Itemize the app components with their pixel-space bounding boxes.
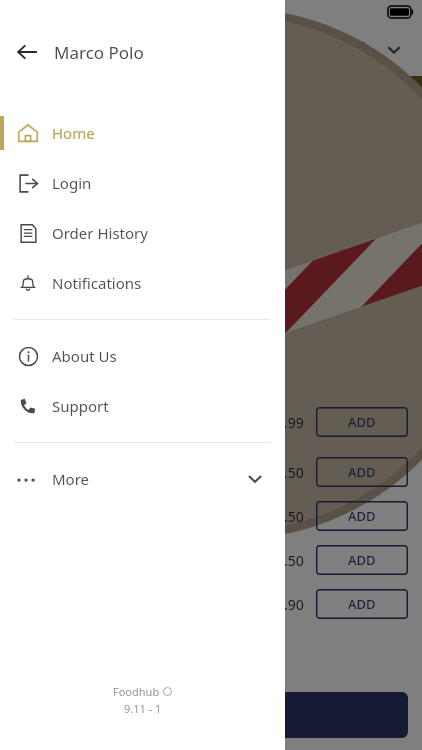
button[interactable]: ADD [316,501,408,531]
staticText: ADD [348,507,376,525]
button[interactable]: Home [0,108,285,158]
button[interactable]: ADD [316,545,408,575]
button[interactable]: Item 4 [14,538,408,582]
button[interactable]: Item 2 [14,450,408,494]
staticText: 9.11 - 1 [124,701,162,716]
button[interactable]: Expand [378,34,410,66]
button[interactable]: Order History [0,208,285,258]
staticText: More [52,469,90,489]
button[interactable]: Item 1 [14,394,408,450]
staticText: £3.90 [268,595,304,614]
button[interactable]: ADD [316,457,408,487]
staticText: Foodhub [113,684,163,699]
button[interactable]: ADD [316,407,408,437]
button[interactable]: About Us [0,331,285,381]
staticText: £6.50 [268,507,304,526]
button[interactable]: Login [0,158,285,208]
staticText: Login [52,173,92,193]
staticText: Notifications [52,273,142,293]
staticText: Marco Polo [54,41,144,64]
staticText: Item 2 [14,463,57,482]
staticText: Support [52,396,109,416]
button[interactable]: Item 3 [14,494,408,538]
staticText: Order History [52,223,148,243]
staticText: £7.99 [268,413,304,432]
staticText: ADD [348,595,376,613]
staticText: later. You can pre-order now for [16,109,252,129]
staticText: About Us [52,346,117,366]
button[interactable]: More [0,454,285,504]
button[interactable]: Delivery [340,33,374,67]
button[interactable]: Item 5 [14,582,408,626]
button[interactable]: Support [0,381,285,431]
staticText: £4.50 [268,551,304,570]
button[interactable]: Notifications [0,258,285,308]
button[interactable]: Back [0,25,54,79]
staticText: ADD [348,413,376,431]
button[interactable]: ADD [316,589,408,619]
staticText: ADD [348,463,376,481]
staticText: £4.50 [268,463,304,482]
staticText: ADD [348,551,376,569]
button[interactable]: VIEW BASKET [14,692,408,738]
staticText: Home [52,123,95,143]
